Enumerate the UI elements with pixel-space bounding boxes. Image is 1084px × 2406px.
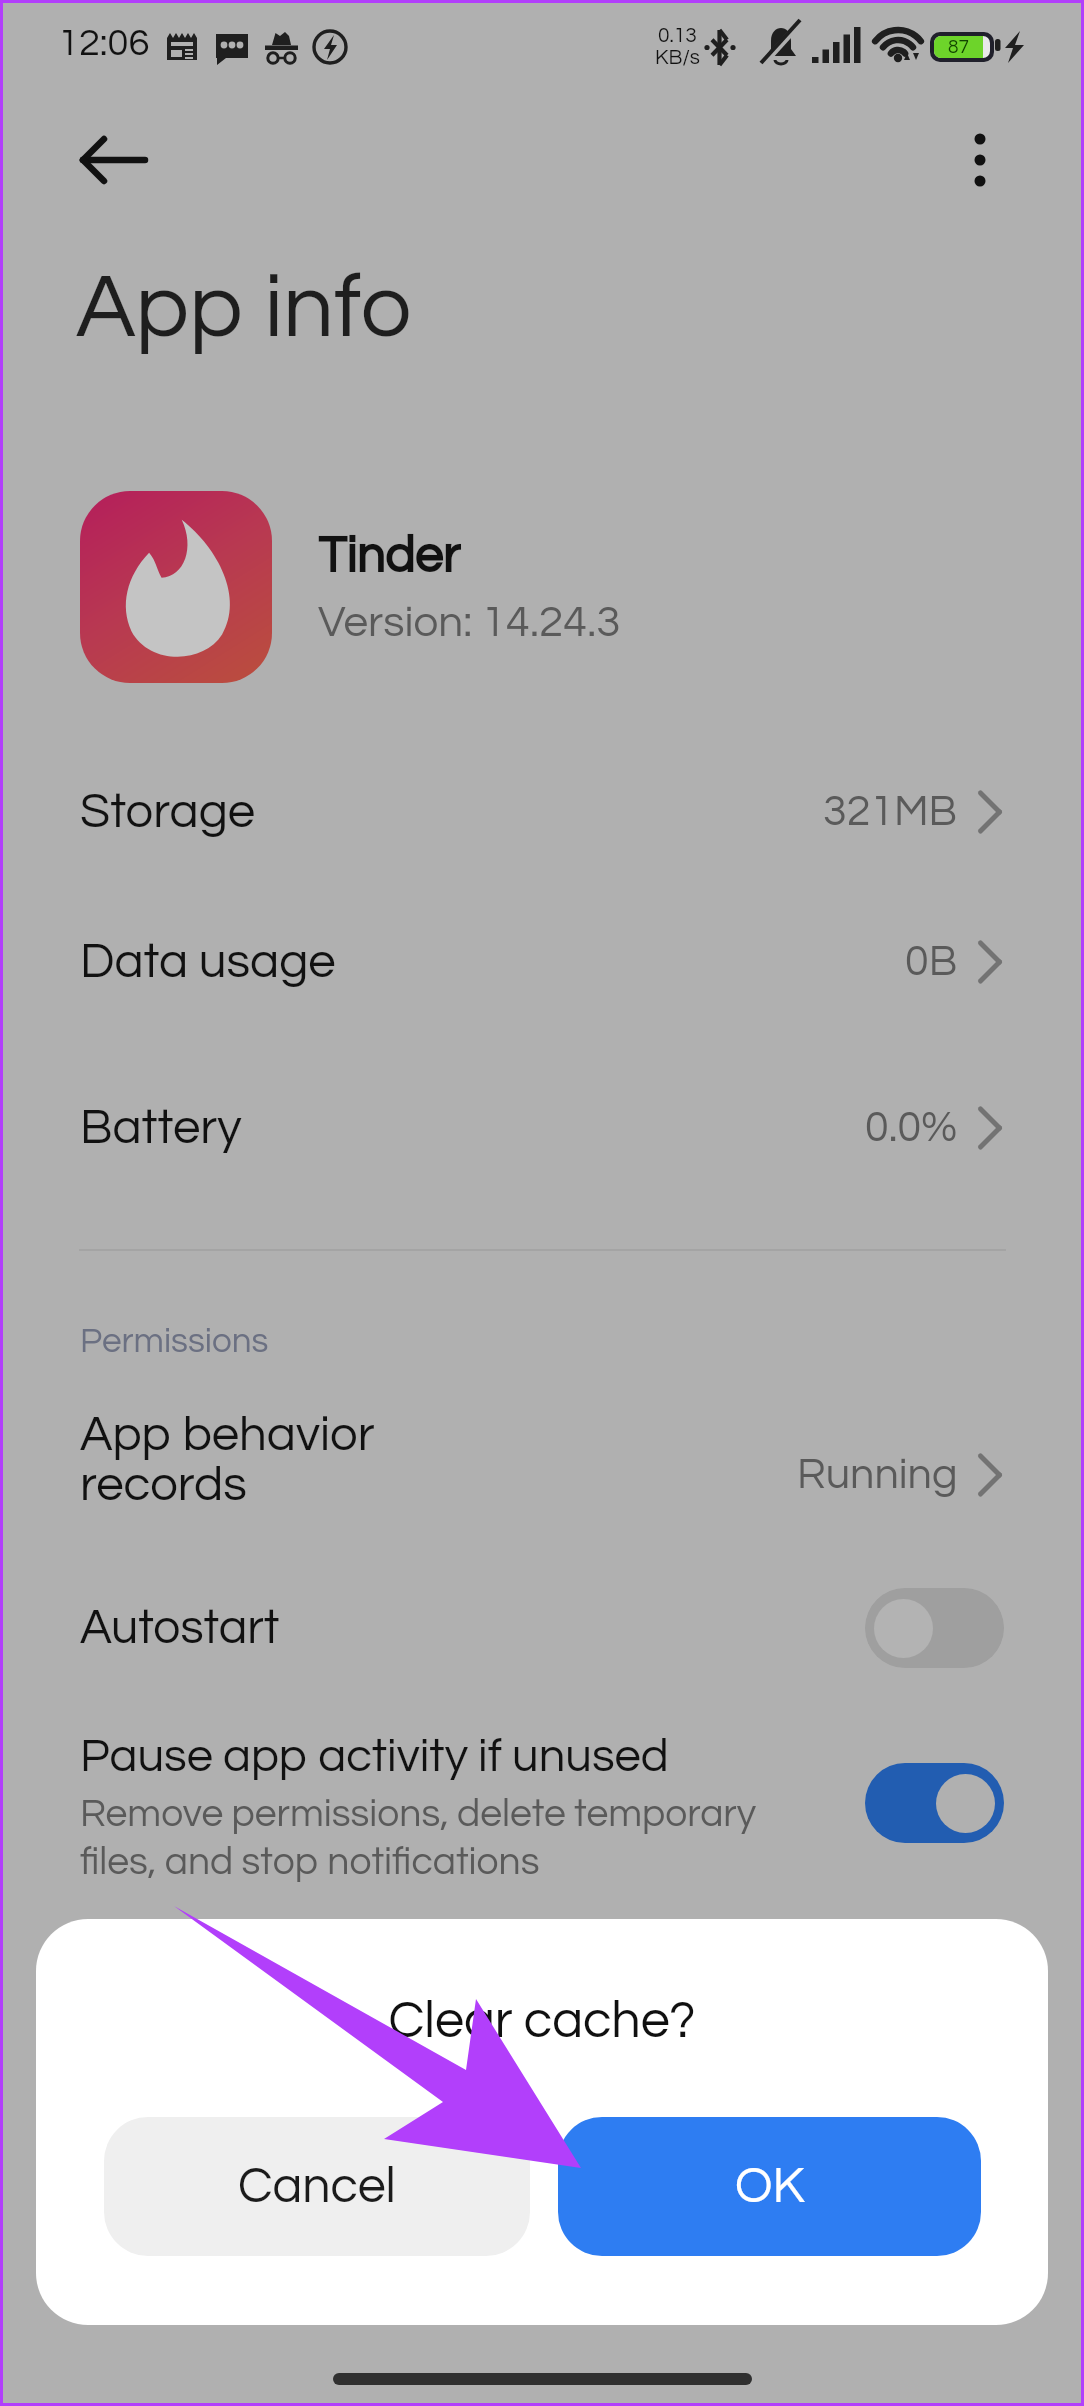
staticText: OK [735,2161,805,2213]
staticText: 12:06 [58,24,150,63]
staticText: KB/s [655,47,700,69]
staticText: Data usage [80,937,336,987]
button[interactable]: Pause app activity if unused [0,1720,1084,1890]
staticText: Autostart [80,1604,280,1653]
staticText: Remove permissions, delete temporary fil… [80,1794,757,1882]
staticText: 0B [905,940,958,984]
button[interactable]: Cancel [104,2117,530,2256]
button[interactable]: Storage [0,736,1084,888]
staticText: Permissions [80,1323,269,1359]
staticText: Version: 14.24.3 [318,600,621,645]
button[interactable]: Battery [0,1052,1084,1204]
staticText: Cancel [238,2161,396,2213]
staticText: App behavior [80,1410,375,1460]
button[interactable]: More options [940,114,1020,206]
button[interactable]: Back [55,114,151,206]
button[interactable]: Data usage [0,886,1084,1038]
button[interactable]: Switch on [865,1763,1004,1843]
button[interactable]: Switch off [865,1588,1004,1668]
button[interactable]: App behavior [0,1400,1084,1550]
button[interactable]: Autostart [0,1568,1084,1688]
staticText: Storage [80,787,256,837]
button[interactable]: OK [558,2117,981,2256]
staticText: Pause app activity if unused [80,1732,669,1780]
staticText: 87 [948,37,969,57]
staticText: records [80,1460,247,1510]
staticText: 321MB [823,790,958,834]
staticText: Running [797,1453,958,1497]
staticText: App info [76,262,412,355]
staticText: Tinder [318,531,460,583]
staticText: 0.0% [865,1106,958,1150]
staticText: Clear cache? [388,1994,696,2048]
staticText: Battery [80,1103,242,1153]
staticText: 0.13 [658,25,697,47]
